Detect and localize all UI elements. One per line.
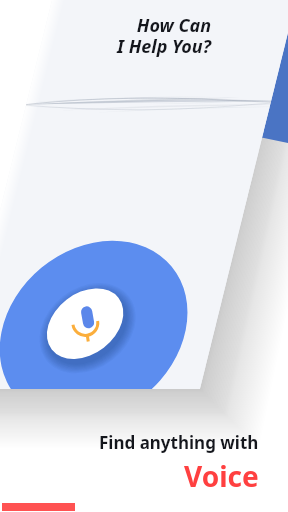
button[interactable]: Voice search microphone: [40, 276, 136, 372]
staticText: Voice: [184, 457, 259, 495]
staticText: Find anything with: [99, 431, 259, 454]
staticText: How Can I Help You?: [117, 13, 211, 59]
